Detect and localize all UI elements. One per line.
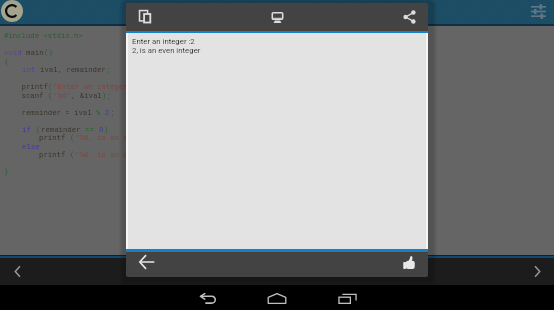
staticText: ( — [70, 149, 75, 159]
staticText: () — [44, 47, 53, 57]
staticText: if — [22, 124, 36, 134]
button[interactable]: Previous file — [0, 258, 34, 285]
staticText: ; — [110, 107, 115, 117]
staticText: ival, remainder — [40, 64, 106, 74]
staticText: "%d" — [53, 90, 71, 100]
staticText: 2, is an even integer — [132, 46, 201, 55]
button[interactable]: Back — [130, 250, 164, 274]
staticText: , &ival — [71, 90, 102, 100]
staticText: printf — [4, 149, 70, 159]
staticText: ( — [70, 132, 75, 142]
staticText: == — [85, 124, 99, 134]
staticText: remainder = ival — [4, 107, 96, 117]
staticText: 2 — [105, 107, 110, 117]
staticText: "%d, is an odd integer\n" — [75, 149, 185, 159]
button[interactable]: Copy output — [128, 3, 162, 30]
staticText: ; — [106, 64, 111, 74]
staticText: "Enter an integer :" — [53, 81, 141, 91]
staticText: % — [96, 107, 105, 117]
staticText: Enter an integer :2 — [132, 37, 195, 46]
staticText: } — [4, 166, 9, 176]
staticText: { — [4, 56, 9, 66]
staticText: main — [26, 47, 44, 57]
button[interactable]: Recent apps — [317, 286, 377, 310]
staticText: 0 — [99, 124, 104, 134]
staticText: "%d, is an even integer\n" — [75, 132, 189, 142]
button[interactable]: Display output — [260, 3, 294, 30]
button[interactable]: Settings — [530, 3, 547, 20]
staticText: ); — [102, 90, 111, 100]
button[interactable]: Back — [178, 286, 238, 310]
staticText — [4, 64, 22, 74]
staticText: ( — [36, 124, 41, 134]
button[interactable]: Home — [247, 286, 307, 310]
staticText: int — [22, 64, 40, 74]
staticText: #include <stdio.h> — [4, 30, 83, 40]
staticText: scanf — [4, 90, 48, 100]
staticText: ( — [48, 81, 53, 91]
button[interactable]: Share output — [392, 3, 426, 30]
button[interactable]: Like — [392, 250, 426, 274]
staticText: ( — [48, 90, 53, 100]
staticText: remainder — [41, 124, 85, 134]
staticText: ) — [104, 124, 109, 134]
button[interactable]: Next file — [520, 258, 554, 285]
staticText: printf — [4, 81, 48, 91]
staticText: printf — [4, 132, 70, 142]
staticText: else — [22, 141, 40, 151]
button[interactable]: C programming app — [1, 0, 23, 22]
staticText: void — [4, 47, 26, 57]
